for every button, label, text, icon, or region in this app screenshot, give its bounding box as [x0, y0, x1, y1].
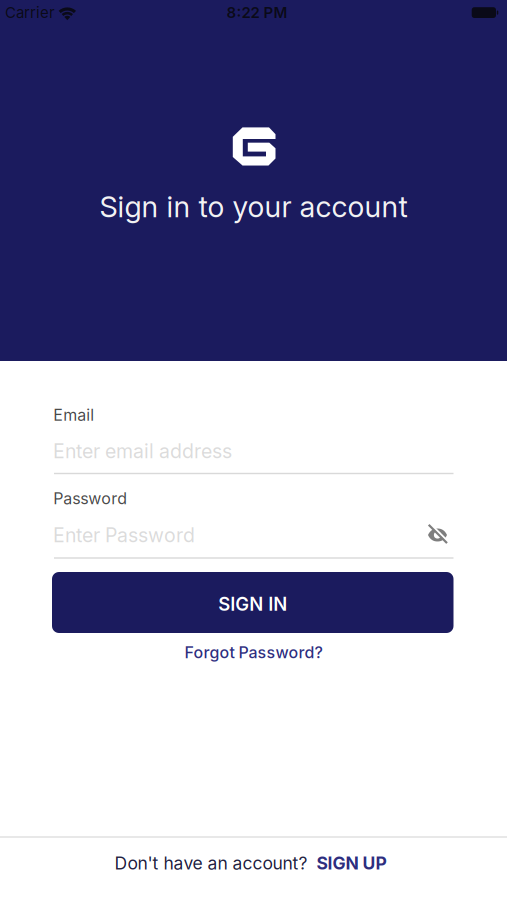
staticText: Forgot Password?	[184, 643, 322, 662]
staticText: Enter Password	[53, 524, 195, 547]
button[interactable]: Enter Password	[53, 524, 453, 559]
staticText: Sign in to your account	[99, 190, 407, 224]
staticText: Password	[53, 489, 127, 508]
button[interactable]: SIGN UP	[316, 853, 386, 873]
staticText: Email	[53, 405, 94, 424]
staticText: Enter email address	[53, 440, 232, 463]
button[interactable]: Enter email address	[53, 440, 453, 474]
staticText: Carrier	[5, 4, 55, 21]
button[interactable]: Forgot Password?	[184, 643, 322, 662]
staticText: Don't have an account?	[114, 853, 307, 873]
staticText: SIGN UP	[316, 853, 386, 873]
button[interactable]	[428, 524, 447, 545]
staticText: 8:22 PM	[226, 4, 287, 21]
staticText: SIGN IN	[218, 593, 287, 615]
button[interactable]: SIGN IN	[52, 572, 453, 633]
